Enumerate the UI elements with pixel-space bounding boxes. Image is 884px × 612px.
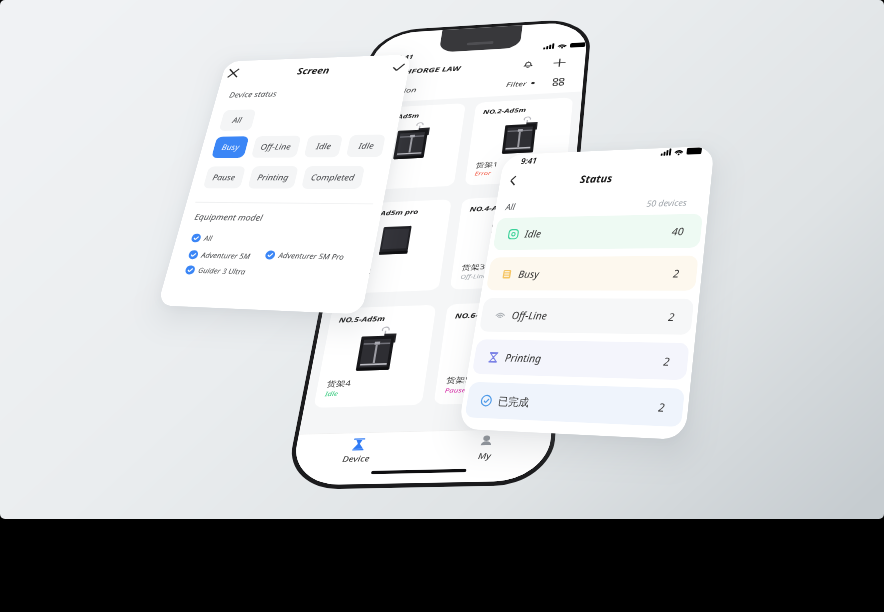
staticText: 货架3 [461,262,486,271]
staticText: NO.2-Ad5m [483,106,527,116]
button[interactable]: Adventurer 5M Pro [264,249,346,262]
staticText: Idle [524,227,543,240]
button[interactable]: Printing [247,166,299,189]
staticText: Idle [357,140,375,151]
staticText: Idle [324,389,339,398]
staticText: All [203,233,214,243]
staticText: Pause [211,172,237,183]
staticText: Status [579,171,614,186]
staticText: Off-Line [259,141,293,152]
button[interactable]: Off-Line [251,135,301,158]
staticText: 9:41 [396,53,415,62]
staticText: 2 [672,266,681,280]
staticText: 9:41 [520,155,538,167]
button[interactable]: Idle [492,213,703,250]
staticText: All [231,115,244,125]
button[interactable]: Idle [304,135,343,158]
button[interactable]: 已完成 [464,382,685,427]
staticText: All [505,200,516,213]
button[interactable]: NO.5-Ad5m [313,305,436,408]
staticText: Adventurer 5M [200,250,252,261]
staticText: Filter [506,79,528,89]
button[interactable]: My [418,430,552,465]
button[interactable]: All [219,109,256,131]
staticText: Printing [504,350,543,365]
staticText: NO.5-Ad5m [338,314,386,325]
staticText: FLASHFORGE LAW [385,64,462,77]
button[interactable]: Device [292,433,423,468]
staticText: Idle [315,141,332,152]
staticText: 40 [671,224,685,238]
staticText: 货架4 [326,378,353,388]
staticText: Function [381,85,418,96]
staticText: 2 [657,399,666,415]
staticText: Adventurer 5M Pro [278,250,346,261]
staticText: 2 [663,353,671,369]
staticText: Screen [296,64,332,77]
staticText: Completed [310,172,356,183]
staticText: NO.4-Ad5m [469,203,515,214]
button[interactable]: Off-Line [479,298,694,335]
button[interactable]: NO.3-Ad5m pro [335,199,452,294]
button[interactable]: Busy [486,255,699,291]
button[interactable]: Grid view [549,75,567,88]
staticText: Equipment model [193,211,264,223]
button[interactable]: Adventurer 5M [188,249,252,261]
staticText: NO.6-Ad5m [454,310,503,321]
staticText: 货架1 [475,160,499,169]
staticText: 货架2 [347,266,372,276]
staticText: 货架5 [446,374,472,385]
staticText: Guider 3 Ultra [197,265,247,276]
staticText: Device [342,453,371,464]
staticText: Error [474,169,491,177]
staticText: Off-Line [460,272,488,280]
button[interactable]: Close [223,65,244,81]
staticText: Device status [228,89,278,100]
staticText: 2 [667,309,676,324]
button[interactable]: Add device [549,56,569,69]
button[interactable]: NO.4-Ad5m [450,194,564,290]
staticText: Pause [444,386,466,394]
button[interactable]: Guider 3 Ultra [184,264,247,276]
staticText: 已完成 [497,394,530,409]
staticText: My [477,450,492,461]
staticText: Busy [517,267,540,280]
button[interactable]: NO.6-Ad5m [433,300,554,405]
staticText: Printing [256,172,290,183]
staticText: NO.1-Ad5m [376,112,420,122]
button[interactable]: Filter [506,79,535,89]
staticText: NO.3-Ad5m pro [358,207,419,218]
button[interactable]: NO.2-Ad5m [464,97,573,186]
button[interactable]: All [190,233,214,243]
button[interactable]: Printing [472,339,690,380]
button[interactable]: Notifications [518,58,538,71]
button[interactable]: Pause [203,166,246,189]
button[interactable]: NO.1-Ad5m [355,103,466,191]
button[interactable]: Confirm [387,59,409,75]
staticText: Busy [220,142,241,152]
button[interactable]: Idle [346,134,386,157]
button[interactable]: Busy [211,136,249,158]
staticText: Off-Line [511,308,549,322]
button[interactable]: Completed [301,166,365,189]
staticText: 50 devices [646,196,688,209]
button[interactable]: Back [502,171,524,190]
